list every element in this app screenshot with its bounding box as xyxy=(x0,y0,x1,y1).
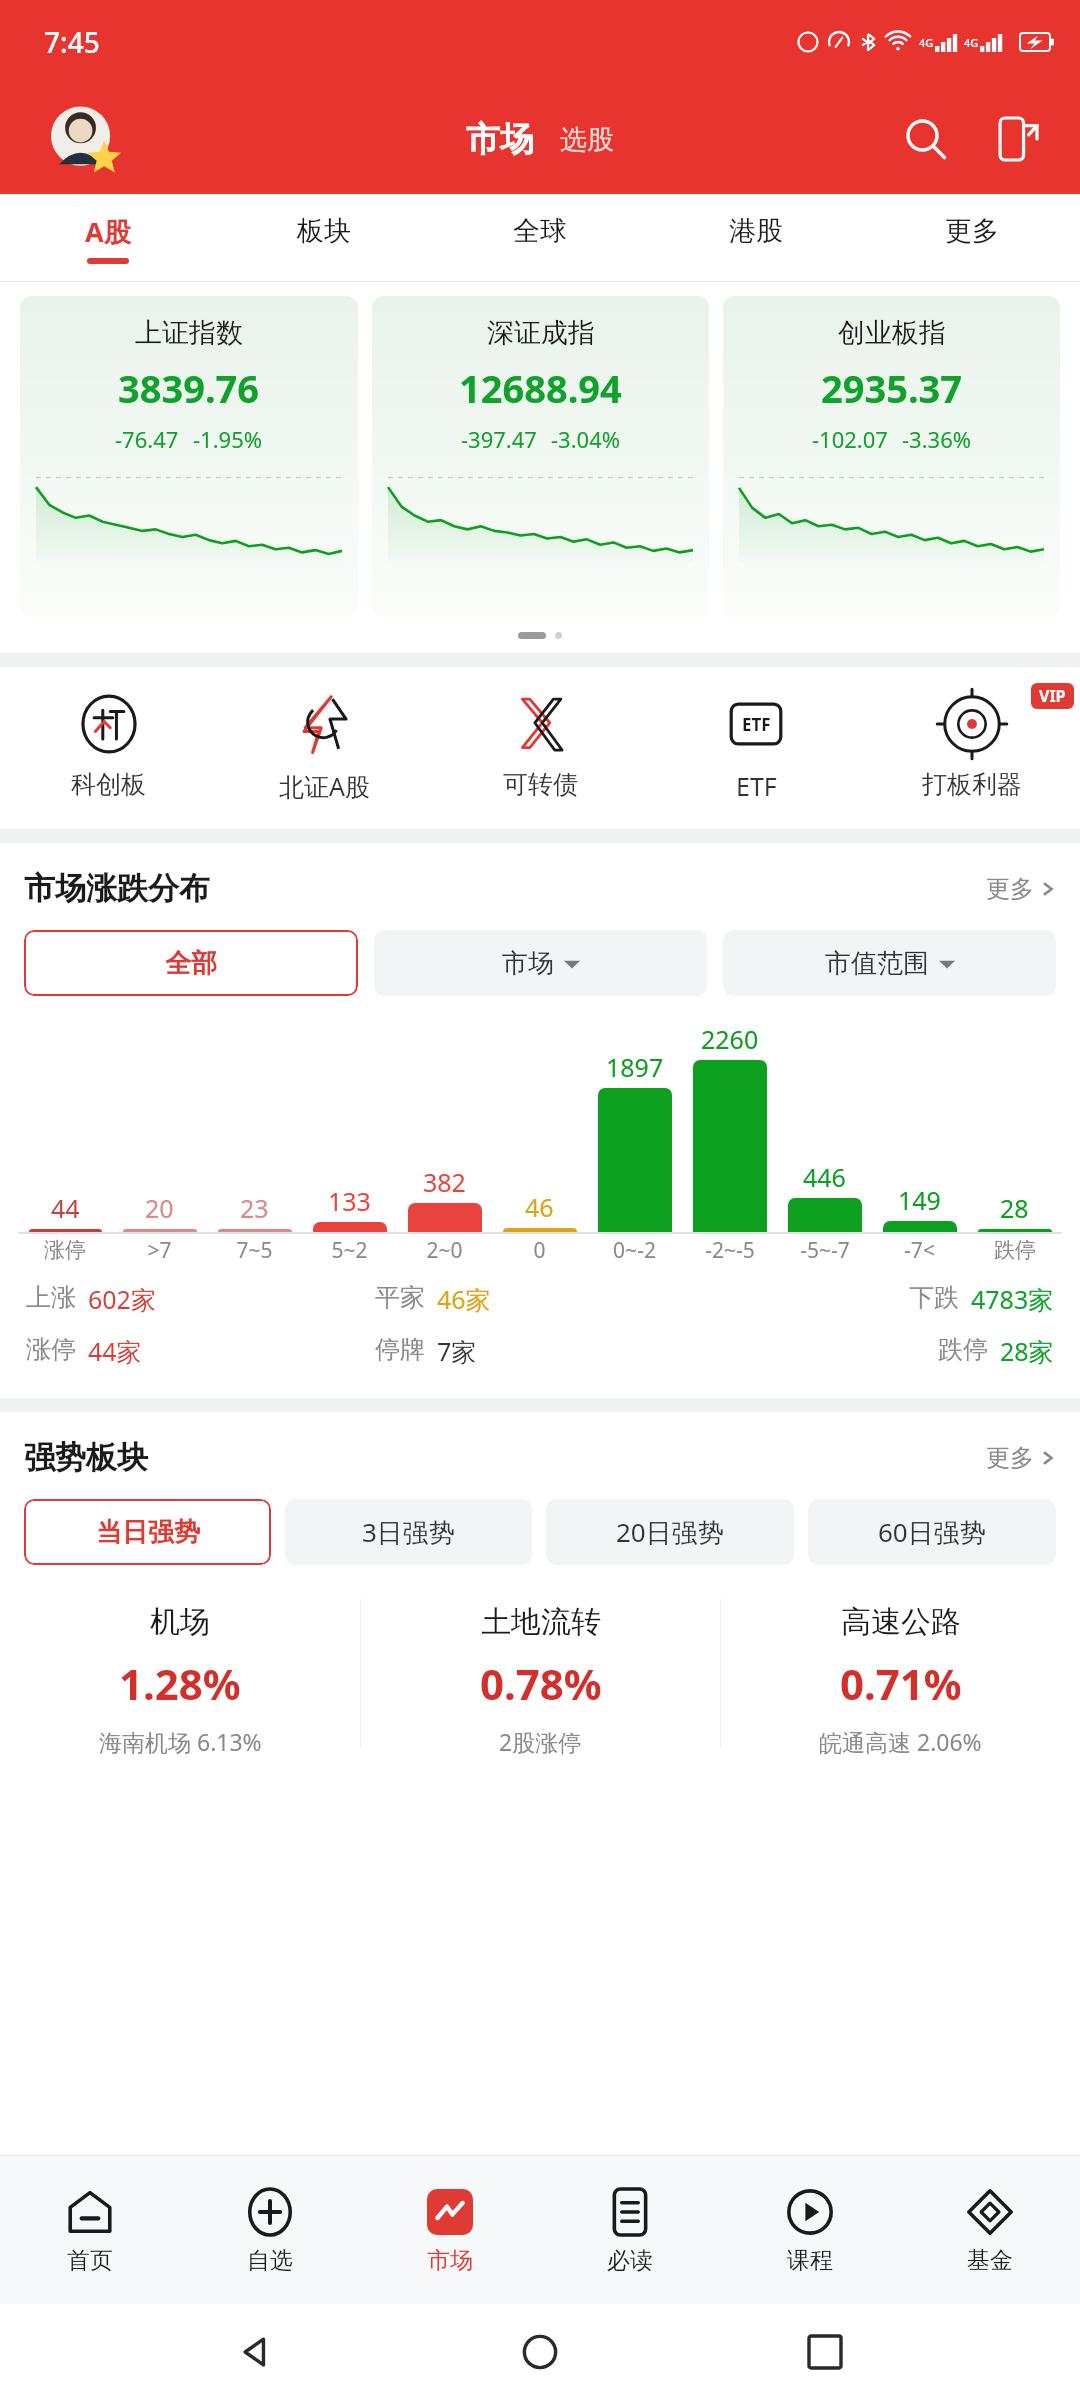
staticText: 更多 xyxy=(945,214,999,248)
staticText: -397.47 xyxy=(461,424,537,454)
staticText: 23 xyxy=(240,1191,269,1225)
staticText: 46家 xyxy=(437,1282,491,1316)
staticText: 市值范围 xyxy=(825,947,929,980)
staticText: -102.07 xyxy=(812,424,888,454)
staticText: 涨停 xyxy=(44,1237,86,1263)
staticText: -3.04% xyxy=(551,424,621,454)
staticText: 皖通高速 2.06% xyxy=(819,1726,982,1757)
staticText: 自选 xyxy=(247,2246,293,2275)
button[interactable]: 创业板指 xyxy=(723,296,1060,618)
staticText: 4G xyxy=(919,35,934,50)
button[interactable]: 20日强势 xyxy=(546,1499,794,1565)
button[interactable]: Home xyxy=(511,2323,569,2381)
button[interactable]: A股 xyxy=(0,194,216,282)
button[interactable]: 全球 xyxy=(432,194,648,282)
staticText: 0.78% xyxy=(480,1655,602,1712)
button[interactable]: 当日强势 xyxy=(24,1499,271,1565)
staticText: 市场 xyxy=(427,2246,473,2275)
button[interactable]: 自选 xyxy=(180,2156,360,2304)
staticText: 0~-2 xyxy=(613,1236,656,1265)
button[interactable]: 市场 xyxy=(360,2156,540,2304)
button[interactable]: 上证指数 xyxy=(20,296,358,618)
button[interactable]: 可转债 xyxy=(432,693,648,800)
staticText: 全部 xyxy=(165,947,217,980)
button[interactable]: Search xyxy=(900,113,952,165)
staticText: 28家 xyxy=(1000,1334,1054,1368)
button[interactable]: Profile xyxy=(48,102,122,176)
staticText: 北证A股 xyxy=(279,769,370,803)
button[interactable]: 更多 xyxy=(986,1443,1056,1473)
button[interactable]: 市值范围 xyxy=(723,930,1056,996)
button[interactable]: Back xyxy=(227,2323,285,2381)
staticText: 首页 xyxy=(67,2246,113,2275)
button[interactable]: ETF xyxy=(648,693,864,803)
staticText: -5~-7 xyxy=(800,1236,850,1265)
button[interactable]: 课程 xyxy=(720,2156,900,2304)
staticText: 3839.76 xyxy=(118,362,260,414)
button[interactable]: 更多 xyxy=(864,194,1080,282)
staticText: 46 xyxy=(525,1190,554,1224)
staticText: 强势板块 xyxy=(24,1438,148,1477)
button[interactable]: 科创板 xyxy=(0,693,216,800)
button[interactable]: 打板利器 xyxy=(864,693,1080,800)
staticText: ETF xyxy=(742,713,771,736)
staticText: 跌停 xyxy=(938,1334,988,1365)
button[interactable]: Scan xyxy=(990,113,1042,165)
staticText: 上证指数 xyxy=(135,316,243,350)
staticText: 44 xyxy=(51,1191,80,1225)
staticText: 20日强势 xyxy=(616,1514,724,1550)
staticText: 板块 xyxy=(297,214,351,248)
staticText: 133 xyxy=(328,1184,371,1218)
staticText: 市场 xyxy=(466,118,534,161)
staticText: -1.95% xyxy=(193,424,263,454)
staticText: 7~5 xyxy=(236,1236,273,1265)
staticText: 7:45 xyxy=(44,23,100,61)
staticText: -76.47 xyxy=(115,424,179,454)
button[interactable]: 选股 xyxy=(560,123,614,157)
staticText: 更多 xyxy=(986,874,1034,904)
button[interactable]: 高速公路 xyxy=(721,1599,1080,1761)
staticText: 全球 xyxy=(513,214,567,248)
staticText: VIP xyxy=(1039,685,1066,707)
staticText: 跌停 xyxy=(994,1237,1036,1263)
staticText: -3.36% xyxy=(902,424,972,454)
staticText: 2股涨停 xyxy=(499,1726,582,1757)
button[interactable]: 北证A股 xyxy=(216,693,432,803)
button[interactable]: Recents xyxy=(796,2323,854,2381)
staticText: 土地流转 xyxy=(481,1603,601,1641)
button[interactable]: 港股 xyxy=(648,194,864,282)
staticText: 市场涨跌分布 xyxy=(24,869,210,908)
button[interactable]: 土地流转 xyxy=(361,1599,720,1761)
button[interactable]: 首页 xyxy=(0,2156,180,2304)
button[interactable]: 市场 xyxy=(466,118,534,161)
staticText: 20 xyxy=(145,1191,174,1225)
button[interactable]: 基金 xyxy=(900,2156,1080,2304)
staticText: 市场 xyxy=(502,947,554,980)
button[interactable]: 市场 xyxy=(374,930,707,996)
staticText: 港股 xyxy=(729,214,783,248)
staticText: 必读 xyxy=(607,2246,653,2275)
button[interactable]: 全部 xyxy=(24,930,358,996)
staticText: 创业板指 xyxy=(838,316,946,350)
staticText: 2935.37 xyxy=(821,362,963,414)
staticText: 当日强势 xyxy=(96,1516,200,1549)
staticText: 4783家 xyxy=(971,1282,1054,1316)
staticText: 高速公路 xyxy=(841,1603,961,1641)
staticText: 7家 xyxy=(437,1334,477,1368)
staticText: 0 xyxy=(533,1236,546,1265)
staticText: -2~-5 xyxy=(705,1236,755,1265)
staticText: 3日强势 xyxy=(362,1514,455,1550)
staticText: 28 xyxy=(1000,1191,1029,1225)
staticText: 科创板 xyxy=(71,769,146,800)
button[interactable]: 更多 xyxy=(986,874,1056,904)
button[interactable]: 3日强势 xyxy=(285,1499,532,1565)
button[interactable]: 深证成指 xyxy=(372,296,709,618)
button[interactable]: 必读 xyxy=(540,2156,720,2304)
staticText: 选股 xyxy=(560,123,614,157)
staticText: A股 xyxy=(85,213,131,250)
button[interactable]: 机场 xyxy=(0,1599,360,1761)
button[interactable]: 板块 xyxy=(216,194,432,282)
staticText: 下跌 xyxy=(909,1282,959,1313)
button[interactable]: 60日强势 xyxy=(808,1499,1056,1565)
staticText: 1.28% xyxy=(119,1655,241,1712)
